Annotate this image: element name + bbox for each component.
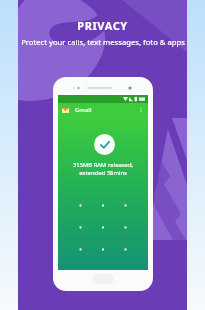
staticText: Gmail [75,106,92,114]
staticText: Protect your calls, text messages, foto … [21,37,185,47]
staticText: 315MB RAM released, extended 38mins [58,161,148,177]
button[interactable]: More options [136,105,146,115]
staticText: PRIVACY [77,18,128,33]
